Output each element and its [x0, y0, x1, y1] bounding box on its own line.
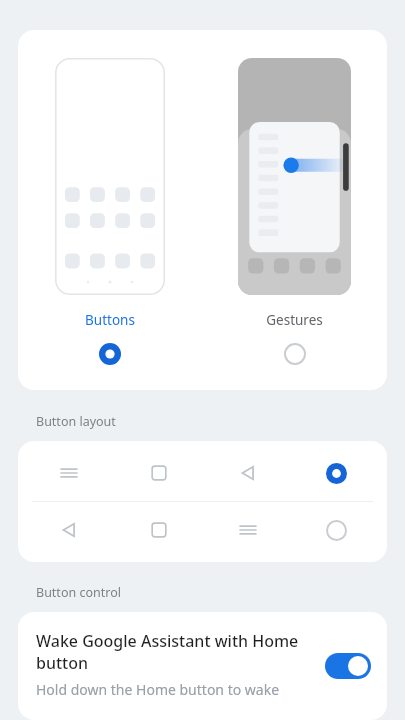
staticText: Wake Google Assistant with Home button	[36, 630, 313, 674]
button[interactable]: Wake Google Assistant with Home button	[18, 612, 387, 720]
staticText: Button control	[36, 584, 121, 601]
button[interactable]	[24, 502, 381, 558]
staticText: Gestures	[266, 311, 323, 329]
staticText: Buttons	[85, 311, 135, 329]
staticText: Button layout	[36, 413, 116, 430]
button[interactable]	[24, 445, 381, 501]
button[interactable]: Gestures	[202, 30, 387, 365]
staticText: Hold down the Home button to wake Google…	[36, 680, 313, 702]
button[interactable]: Wake Google Assistant toggle	[325, 653, 371, 679]
button[interactable]: Buttons	[18, 30, 202, 365]
